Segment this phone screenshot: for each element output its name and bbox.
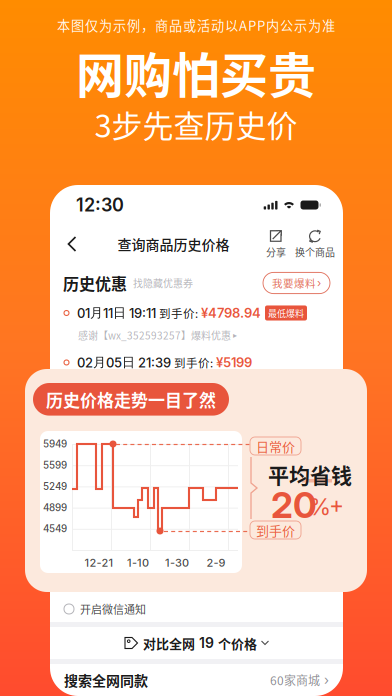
staticText: +	[329, 491, 344, 519]
staticText: 60家商城	[270, 671, 320, 689]
staticText: 到手价:	[156, 305, 201, 321]
staticText: %	[309, 493, 331, 521]
staticText: 平均省钱	[268, 459, 352, 489]
staticText: 换个商品	[295, 245, 335, 259]
staticText: 找隐藏优惠券	[133, 276, 193, 290]
staticText: ▸	[233, 331, 237, 340]
staticText: 历史价格走势一目了然	[46, 387, 216, 412]
staticText: 5949	[43, 438, 67, 450]
staticText: 到手价:	[171, 354, 216, 371]
staticText: ¥5199	[216, 355, 252, 370]
staticText: 查询商品历史价格	[117, 234, 229, 254]
staticText: 感谢【wx_352593257】爆料优惠	[78, 328, 231, 342]
button[interactable]: 返回	[58, 229, 86, 259]
staticText: 我要爆料	[272, 275, 316, 291]
staticText: ¥4798.94	[201, 305, 261, 321]
staticText: 12-21	[84, 556, 113, 569]
button[interactable]: 分享	[261, 229, 291, 259]
button[interactable]: 换个商品	[295, 229, 335, 259]
staticText: 01月11日 19:11	[77, 305, 156, 321]
staticText: 个价格	[218, 634, 257, 652]
staticText: 12:30	[76, 194, 124, 216]
staticText: ›	[317, 276, 321, 290]
staticText: 4899	[43, 502, 67, 514]
staticText: 本图仅为示例，商品或活动以APP内公示为准	[57, 15, 335, 34]
staticText: 4549	[43, 523, 67, 535]
staticText: 分享	[266, 245, 286, 259]
staticText: 网购怕买贵	[76, 37, 316, 107]
staticText: 开启微信通知	[80, 601, 146, 617]
staticText: 1-30	[165, 556, 189, 569]
staticText: 5599	[43, 459, 67, 471]
staticText: 1-10	[127, 556, 149, 569]
staticText: 最低爆料	[268, 306, 304, 319]
staticText: 对比全网	[143, 634, 195, 652]
button[interactable]: 对比全网	[50, 627, 343, 659]
staticText: 19	[199, 634, 214, 651]
staticText: 日常价	[256, 437, 295, 455]
staticText: 5249	[43, 480, 67, 492]
staticText: ›	[320, 672, 329, 688]
staticText: 02月05日 21:39	[77, 354, 171, 371]
staticText: 20	[271, 483, 317, 527]
staticText: 搜索全网同款	[64, 670, 148, 690]
button[interactable]: 我要爆料	[263, 272, 330, 294]
staticText: 2-9	[206, 556, 225, 569]
staticText: 3步先查历史价	[94, 102, 297, 146]
staticText: 历史优惠	[63, 271, 127, 295]
staticText: 到手价	[256, 521, 295, 539]
